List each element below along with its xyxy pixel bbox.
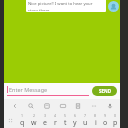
button[interactable]: Google Assistant: [9, 100, 20, 111]
staticText: 6: [74, 113, 77, 118]
staticText: 1: [21, 113, 24, 118]
button[interactable]: Switch keyboard: [4, 112, 17, 128]
button[interactable]: Enter Message: [7, 86, 89, 96]
staticText: o: [103, 118, 108, 128]
staticText: t: [64, 118, 67, 128]
staticText: 7: [84, 113, 87, 118]
button[interactable]: Search: [25, 100, 36, 111]
button[interactable]: Voice input: [104, 100, 115, 111]
staticText: 2: [33, 113, 36, 118]
staticText: 3: [44, 113, 47, 118]
staticText: Nice picture!! I want to hear your: [28, 1, 93, 7]
staticText: 8: [94, 113, 97, 118]
staticText: SEND: [99, 88, 111, 94]
staticText: y: [73, 118, 77, 128]
button[interactable]: 2: [28, 112, 39, 128]
button[interactable]: Clipboard: [72, 100, 83, 111]
staticText: u: [83, 118, 88, 128]
button[interactable]: GIF: [57, 100, 68, 111]
button[interactable]: 8: [90, 112, 100, 128]
button[interactable]: More options: [88, 100, 99, 111]
button[interactable]: SEND: [92, 86, 117, 96]
staticText: q: [20, 118, 25, 128]
button[interactable]: 7: [80, 112, 90, 128]
button[interactable]: 5: [60, 112, 70, 128]
staticText: 5: [64, 113, 67, 118]
button[interactable]: 6: [70, 112, 80, 128]
button[interactable]: Stickers: [41, 100, 52, 111]
staticText: i: [95, 118, 97, 128]
staticText: r: [54, 118, 57, 128]
button[interactable]: 9: [100, 112, 110, 128]
staticText: 9: [104, 113, 107, 118]
button[interactable]: Contact avatar: [108, 1, 119, 12]
button[interactable]: Nice picture!! I want to hear your: [26, 0, 106, 12]
staticText: 4: [54, 113, 57, 118]
staticText: p: [113, 118, 118, 128]
button[interactable]: 0: [110, 112, 120, 128]
staticText: w: [31, 118, 37, 128]
staticText: 0: [114, 113, 117, 118]
staticText: story there.: [28, 8, 51, 11]
button[interactable]: 3: [39, 112, 50, 128]
staticText: Enter Message: [9, 86, 48, 93]
button[interactable]: 1: [17, 112, 28, 128]
button[interactable]: 4: [50, 112, 60, 128]
staticText: e: [43, 118, 47, 128]
